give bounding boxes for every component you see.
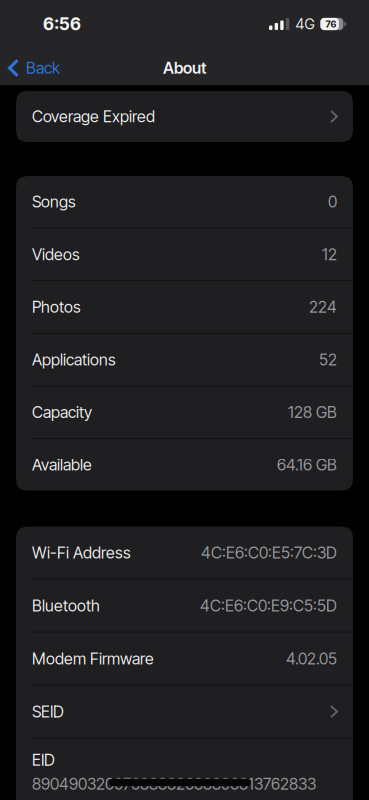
staticText: 128 GB — [288, 403, 337, 422]
staticText: Songs — [32, 192, 76, 211]
staticText: Coverage Expired — [32, 107, 155, 126]
staticText: Modem Firmware — [32, 649, 154, 668]
staticText: Videos — [32, 245, 80, 264]
staticText: Photos — [32, 298, 81, 316]
staticText: 4.02.05 — [286, 649, 337, 668]
staticText: Back — [26, 59, 60, 77]
staticText: 0 — [328, 192, 337, 211]
staticText: 76 — [325, 18, 336, 29]
staticText: 224 — [309, 298, 337, 316]
staticText: Capacity — [32, 403, 92, 422]
staticText: Applications — [32, 350, 116, 369]
staticText: 64.16 GB — [277, 455, 337, 474]
staticText: Available — [32, 455, 92, 474]
staticText: About — [163, 59, 206, 77]
staticText: Wi-Fi Address — [32, 543, 131, 562]
staticText: 89049032007688882688896813762833 — [32, 774, 316, 793]
staticText: 4C:E6:C0:E9:C5:5D — [200, 596, 337, 615]
button[interactable]: Coverage Expired — [16, 91, 353, 142]
button[interactable]: SEID — [16, 686, 353, 738]
staticText: SEID — [32, 702, 64, 721]
staticText: 52 — [319, 350, 337, 369]
staticText: EID — [32, 751, 55, 769]
staticText: Bluetooth — [32, 596, 100, 615]
staticText: 4G — [295, 15, 314, 33]
button[interactable]: Back — [0, 59, 60, 77]
staticText: 4C:E6:C0:E5:7C:3D — [201, 543, 337, 562]
staticText: 6:56 — [43, 14, 81, 34]
staticText: 12 — [322, 245, 337, 264]
